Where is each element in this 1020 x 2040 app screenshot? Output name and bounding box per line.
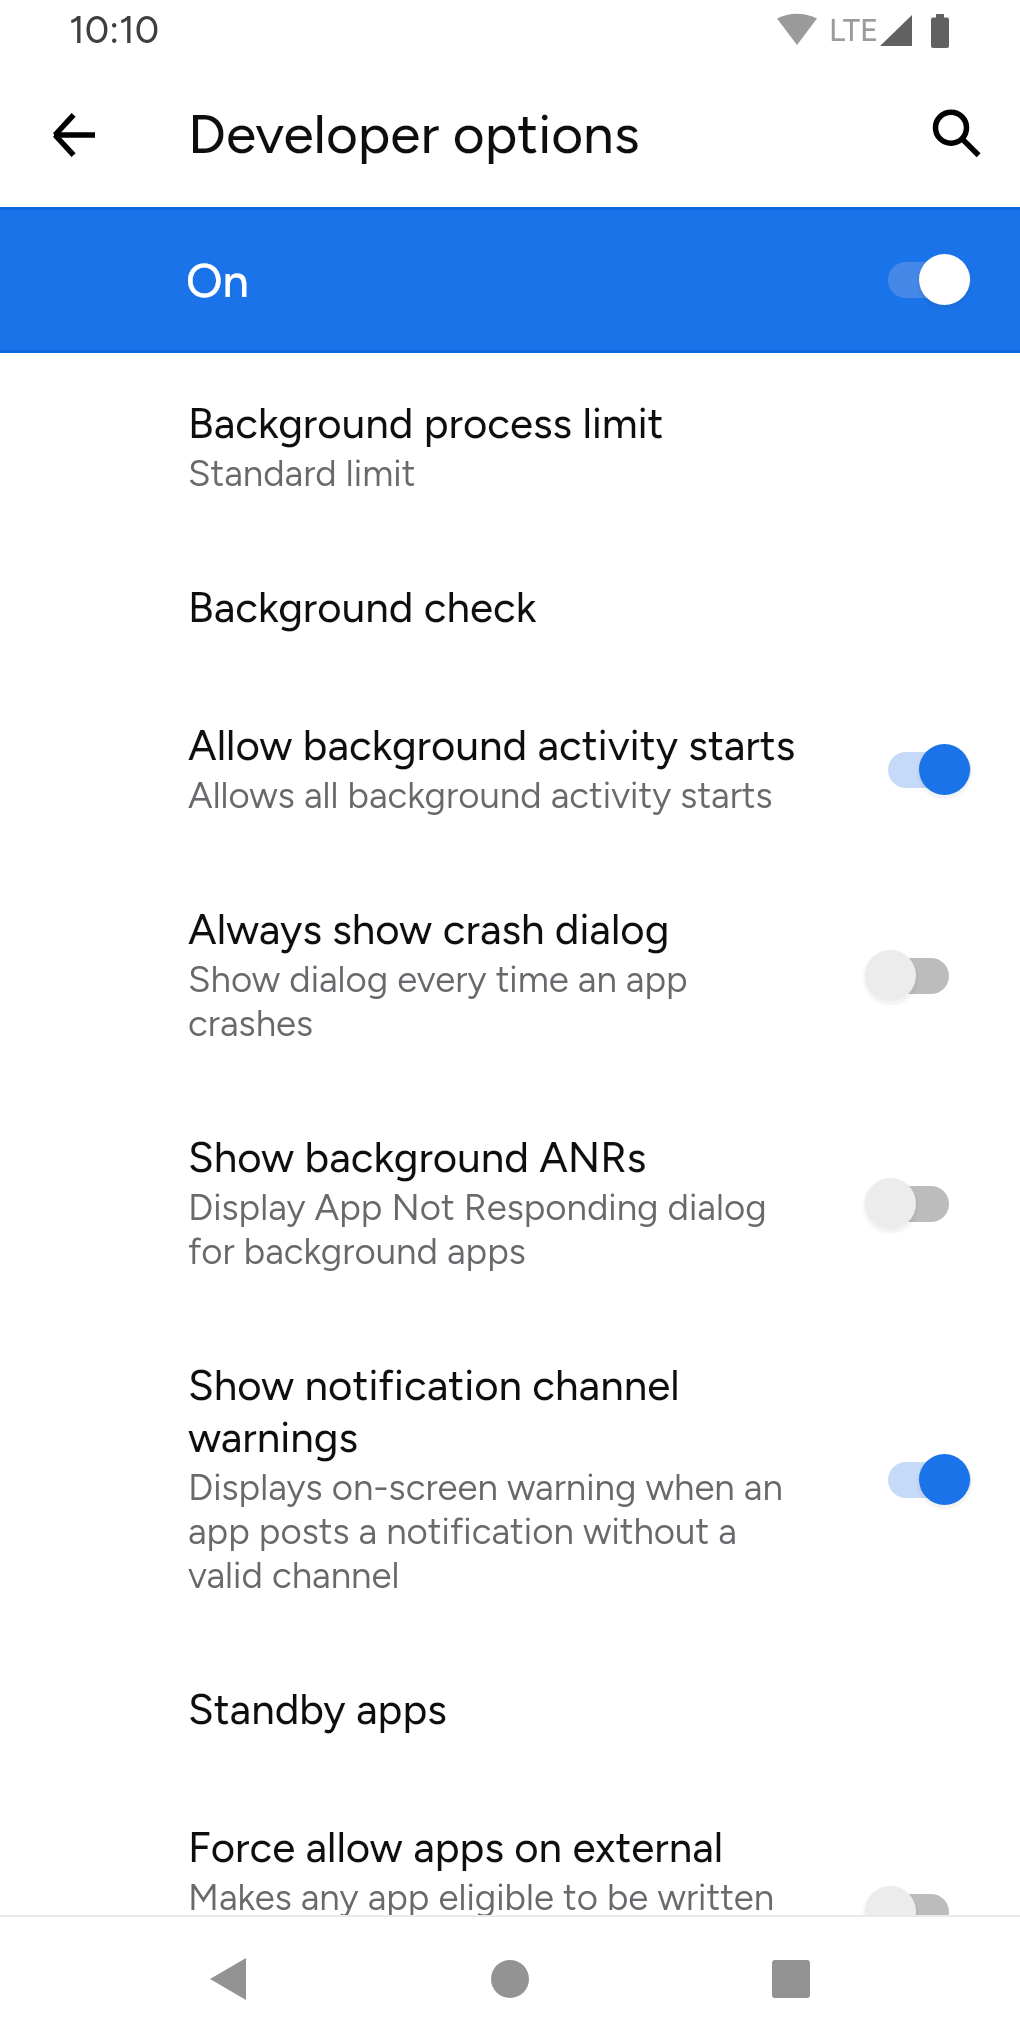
staticText: Makes any app eligible to be written to … xyxy=(188,1875,775,2007)
staticText: Background check xyxy=(188,581,537,633)
staticText: Allows all background activity starts xyxy=(188,773,773,817)
button[interactable]: Allow background activity starts xyxy=(0,675,1020,859)
button[interactable]: Standby apps xyxy=(0,1639,1020,1777)
button[interactable]: Always show crash dialog xyxy=(0,859,1020,1087)
button[interactable]: On xyxy=(0,207,1020,353)
button[interactable]: Back xyxy=(30,91,118,179)
staticText: Show background ANRs xyxy=(188,1131,647,1183)
button[interactable]: Back xyxy=(183,1934,273,2024)
staticText: Background process limit xyxy=(188,397,664,449)
staticText: Standby apps xyxy=(188,1683,447,1735)
staticText: Developer options xyxy=(188,101,640,167)
staticText: Displays on-screen warning when an app p… xyxy=(188,1465,783,1597)
staticText: Show notification channel warnings xyxy=(188,1359,680,1463)
button[interactable]: Background check xyxy=(0,537,1020,675)
staticText: Show dialog every time an app crashes xyxy=(188,957,688,1045)
staticText: Standard limit xyxy=(188,451,416,495)
button[interactable]: Home xyxy=(465,1934,555,2024)
button[interactable]: Search xyxy=(907,91,995,179)
staticText: LTE xyxy=(829,12,879,49)
staticText: 10:10 xyxy=(69,7,160,53)
button[interactable]: Show notification channel warnings xyxy=(0,1315,1020,1639)
staticText: Force allow apps on external xyxy=(188,1821,724,1873)
staticText: Display App Not Responding dialog for ba… xyxy=(188,1185,767,1273)
button[interactable]: Background process limit xyxy=(0,353,1020,537)
button[interactable]: Show background ANRs xyxy=(0,1087,1020,1315)
button[interactable]: Recents xyxy=(746,1934,836,2024)
staticText: Allow background activity starts xyxy=(188,719,796,771)
button[interactable]: Force allow apps on external xyxy=(0,1777,1020,2040)
staticText: On xyxy=(186,252,249,308)
staticText: Always show crash dialog xyxy=(188,903,670,955)
